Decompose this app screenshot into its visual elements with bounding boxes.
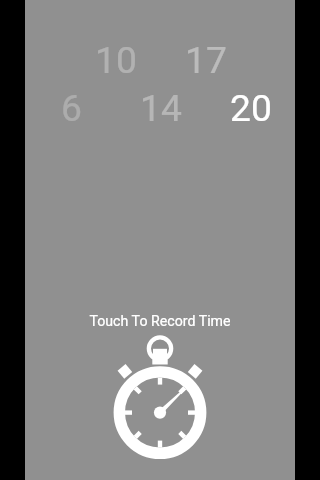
button[interactable]: Touch To Record Time [25, 0, 295, 480]
staticText: 14 [140, 86, 182, 130]
staticText: Touch To Record Time [25, 313, 295, 480]
staticText: 17 [185, 38, 227, 82]
staticText: 20 [230, 86, 272, 130]
staticText: 6 [61, 86, 82, 130]
staticText: 10 [95, 38, 137, 82]
